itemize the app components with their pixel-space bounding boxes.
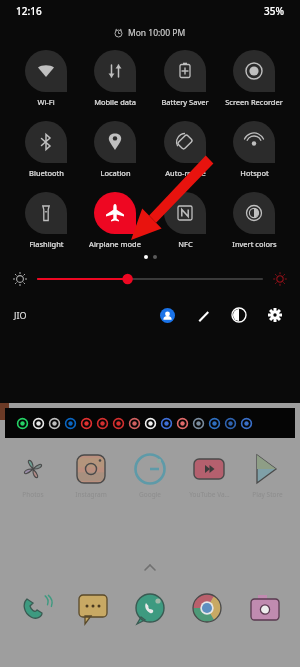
button[interactable]: Edit <box>192 304 214 326</box>
button[interactable]: NFC <box>154 192 216 249</box>
button[interactable]: Play Store <box>241 452 293 499</box>
staticText: Google <box>139 490 161 499</box>
button[interactable] <box>38 271 262 287</box>
button[interactable]: Location <box>84 121 146 178</box>
staticText: NFC <box>178 239 193 249</box>
button[interactable]: Bluetooth <box>15 121 77 178</box>
staticText: Mobile data <box>94 97 136 107</box>
button[interactable]: Chrome <box>185 586 229 630</box>
button[interactable]: Airplane mode <box>84 192 146 249</box>
staticText: Flashlight <box>29 239 64 249</box>
staticText: Airplane mode <box>89 239 141 249</box>
staticText: 12:16 <box>16 4 42 18</box>
staticText: Bluetooth <box>29 168 64 178</box>
button[interactable]: YouTube Va… <box>183 452 235 499</box>
button[interactable]: Invert colors <box>223 192 285 249</box>
staticText: Battery Saver <box>161 97 209 107</box>
staticText: Wi-Fi <box>37 97 55 107</box>
staticText: 35% <box>264 4 284 18</box>
button[interactable]: Wi-Fi <box>15 50 77 107</box>
other: Auto brightness <box>272 271 288 287</box>
button[interactable]: Hotspot <box>223 121 285 178</box>
button[interactable]: Flashlight <box>15 192 77 249</box>
button[interactable]: Auto-rotate <box>154 121 216 178</box>
staticText: Location <box>100 168 131 178</box>
staticText: Photos <box>22 490 44 499</box>
staticText: Hotspot <box>240 168 269 178</box>
button[interactable]: Power <box>228 304 250 326</box>
button[interactable]: User <box>156 304 178 326</box>
button[interactable]: Settings <box>264 304 286 326</box>
staticText: Mon 10:00 PM <box>128 27 186 39</box>
button[interactable]: Instagram <box>65 452 117 499</box>
button[interactable]: Google <box>124 452 176 499</box>
button[interactable]: Messages <box>71 586 115 630</box>
staticText: Play Store <box>252 490 283 499</box>
staticText: Auto-rotate <box>165 168 206 178</box>
staticText: Invert colors <box>232 239 277 249</box>
staticText: JIO <box>14 309 27 321</box>
button[interactable]: Mobile data <box>84 50 146 107</box>
button[interactable]: Phone <box>13 586 57 630</box>
button[interactable]: Camera <box>243 586 287 630</box>
staticText: YouTube Va… <box>189 490 230 499</box>
button[interactable]: Battery Saver <box>154 50 216 107</box>
staticText: Screen Recorder <box>225 97 283 107</box>
button[interactable]: Screen Recorder <box>223 50 285 107</box>
button[interactable]: WhatsApp <box>128 586 172 630</box>
staticText: Instagram <box>75 490 107 499</box>
button[interactable]: Photos <box>7 452 59 499</box>
